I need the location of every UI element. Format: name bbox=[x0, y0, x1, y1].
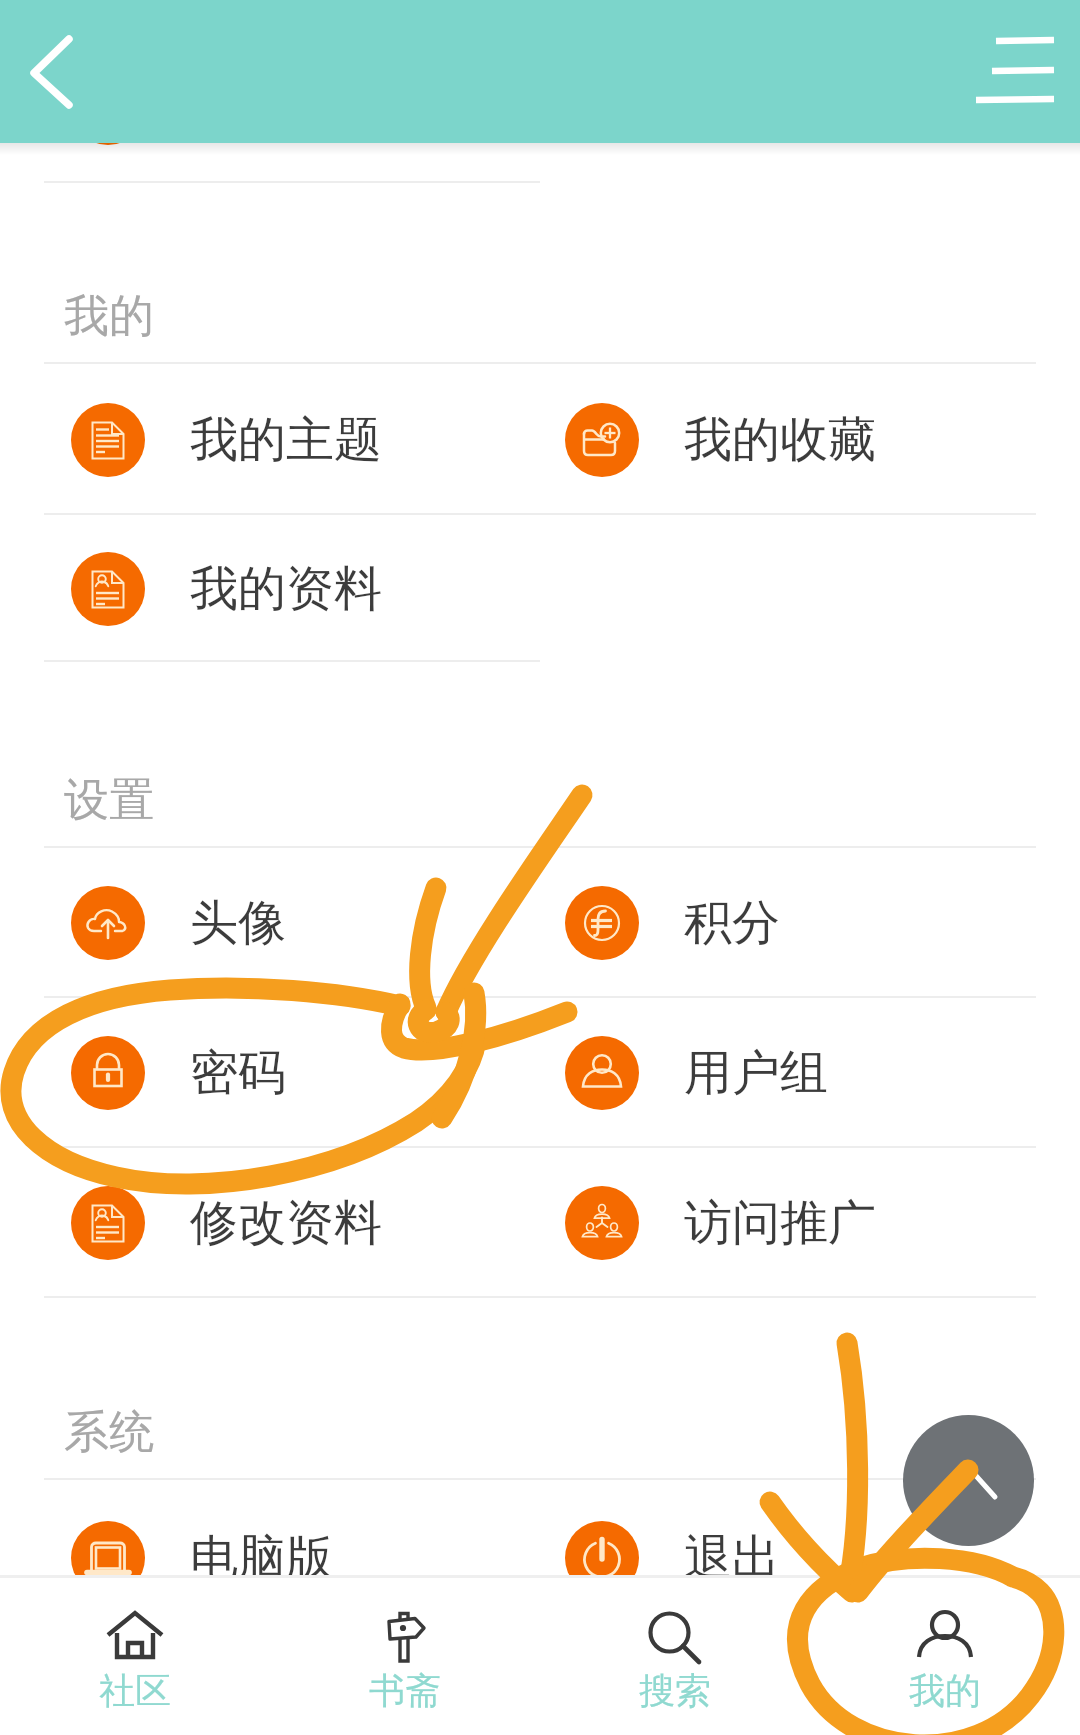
button[interactable]: 我的主题 bbox=[44, 366, 538, 513]
staticText: 搜索 bbox=[639, 1668, 711, 1713]
staticText: 密码 bbox=[190, 1043, 286, 1103]
button[interactable]: 积分 bbox=[538, 850, 1032, 996]
staticText: 电脑版 bbox=[190, 1528, 334, 1588]
staticText: 书斋 bbox=[369, 1668, 441, 1713]
button[interactable]: 我的资料 bbox=[44, 517, 538, 660]
staticText: 头像 bbox=[190, 893, 286, 953]
staticText: 我的 bbox=[64, 288, 154, 345]
staticText: 用户组 bbox=[684, 1043, 828, 1103]
button[interactable]: 社区 bbox=[0, 1578, 270, 1713]
button[interactable]: 密码 bbox=[44, 1000, 538, 1146]
button[interactable]: 搜索 bbox=[540, 1578, 810, 1713]
staticText: 修改资料 bbox=[190, 1193, 382, 1253]
staticText: 社区 bbox=[99, 1668, 171, 1713]
button[interactable]: 我的收藏 bbox=[538, 366, 1032, 513]
button[interactable]: 电脑版 bbox=[44, 1485, 538, 1631]
staticText: 访问推广 bbox=[684, 1193, 876, 1253]
button[interactable]: 书斋 bbox=[270, 1578, 540, 1713]
button[interactable]: 退出 bbox=[538, 1485, 1032, 1631]
button[interactable]: 修改资料 bbox=[44, 1150, 538, 1296]
button[interactable]: 用户组 bbox=[538, 1000, 1032, 1146]
staticText: 设置 bbox=[64, 772, 154, 829]
staticText: 我的主题 bbox=[190, 410, 382, 470]
button[interactable]: 头像 bbox=[44, 850, 538, 996]
staticText: 我的资料 bbox=[190, 559, 382, 619]
staticText: 积分 bbox=[684, 893, 780, 953]
staticText: 系统 bbox=[64, 1404, 154, 1461]
staticText: 我的收藏 bbox=[684, 410, 876, 470]
staticText: 我的 bbox=[909, 1668, 981, 1713]
staticText: 退出 bbox=[684, 1528, 780, 1588]
button[interactable]: 访问推广 bbox=[538, 1150, 1032, 1296]
button[interactable]: 我的 bbox=[810, 1578, 1080, 1713]
button[interactable]: Back bbox=[6, 10, 126, 130]
button[interactable]: Scroll to top bbox=[903, 1415, 1034, 1546]
button[interactable]: Menu bbox=[956, 0, 1076, 120]
